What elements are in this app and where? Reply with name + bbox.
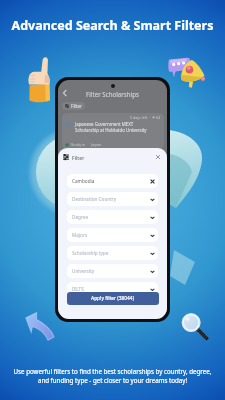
- staticText: Filter: [71, 103, 82, 109]
- staticText: Destination Country: [72, 196, 117, 202]
- button[interactable]: Destination Country: [67, 192, 158, 206]
- button[interactable]: Close: [154, 153, 162, 161]
- staticText: Japanese Government MEXT Scholarship at …: [75, 121, 147, 133]
- staticText: Apply filter (38044): [91, 295, 135, 302]
- staticText: Filter Scholarships: [86, 90, 140, 98]
- staticText: Advanced Search & Smart Filters: [0, 17, 225, 34]
- button[interactable]: 5 days left · ⚑ 64: [62, 113, 164, 149]
- button[interactable]: Back: [60, 88, 70, 98]
- button[interactable]: Filter: [65, 102, 82, 110]
- staticText: University: [72, 268, 95, 274]
- button[interactable]: Degree: [67, 210, 158, 224]
- staticText: Majors: [72, 232, 88, 238]
- staticText: IELTS: [72, 286, 84, 292]
- button[interactable]: Cambodia: [67, 174, 158, 188]
- button[interactable]: Majors: [67, 228, 158, 242]
- staticText: Filter: [72, 154, 85, 161]
- button[interactable]: Apply filter (38044): [67, 292, 159, 305]
- staticText: Cambodia: [72, 178, 95, 184]
- staticText: Study in Japan: [71, 142, 102, 147]
- staticText: 5 days left · ⚑ 64: [130, 115, 161, 120]
- button[interactable]: Scholarship type: [67, 246, 158, 260]
- staticText: Degree: [72, 214, 89, 220]
- staticText: Use powerful filters to find the best sc…: [6, 367, 219, 385]
- staticText: Scholarship type: [72, 250, 109, 256]
- button[interactable]: University: [67, 264, 158, 278]
- button[interactable]: IELTS: [67, 282, 158, 296]
